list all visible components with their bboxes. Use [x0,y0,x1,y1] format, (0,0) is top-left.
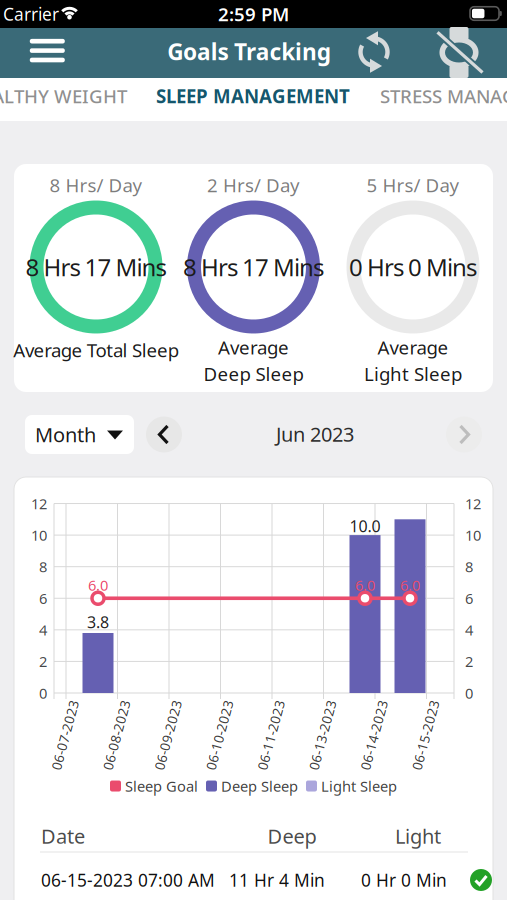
button[interactable]: Previous month [146,416,182,452]
staticText: 6.0 [400,575,420,595]
staticText: 2 [39,652,47,671]
staticText: 06-14-2023 [338,726,410,744]
staticText: Average [218,335,289,360]
staticText: 0 [465,683,473,703]
staticText: 11 Hr 4 Min [229,868,325,891]
staticText: 6.0 [88,575,108,595]
staticText: 12 [465,494,481,513]
staticText: 06-13-2023 [286,726,358,744]
staticText: Light Sleep [364,361,462,386]
staticText: 0 Hr 0 Min [361,868,447,891]
staticText: Average Total Sleep [13,338,179,362]
staticText: 10 [31,525,47,545]
staticText: 10 [465,525,481,545]
staticText: 10.0 [349,515,380,537]
staticText: 2 [465,652,473,671]
staticText: 2:59 PM [218,2,289,26]
staticText: 2 Hrs/ Day [207,173,300,197]
staticText: Light Sleep [321,776,397,796]
staticText: Deep [267,823,316,849]
staticText: 06-07-2023 [29,726,101,744]
staticText: 06-15-2023 [389,726,461,744]
staticText: 6 [39,588,47,608]
button[interactable]: Watch disconnected [435,26,483,78]
staticText: 8 Hrs 17 Mins [25,251,166,283]
staticText: 06-09-2023 [132,726,204,744]
staticText: 8 [39,557,47,576]
staticText: 06-11-2023 [235,726,307,744]
staticText: 8 Hrs/ Day [49,173,142,197]
staticText: Sleep Goal [125,776,198,796]
staticText: 5 Hrs/ Day [366,173,459,197]
staticText: 12 [31,494,47,513]
button[interactable]: Refresh [352,30,396,74]
staticText: 0 [39,683,47,703]
staticText: 06-15-2023 07:00 AM [41,868,215,891]
staticText: Date [41,823,85,849]
staticText: Deep Sleep [221,776,298,796]
staticText: 06-08-2023 [80,726,152,744]
staticText: SLEEP MANAGEMENT [156,84,350,108]
button[interactable]: Next month [446,416,482,452]
staticText: Goals Tracking [167,36,331,66]
button[interactable]: STRESS MANAGEMENT [380,84,507,108]
staticText: Carrier [3,2,59,25]
staticText: STRESS MANAGEMENT [380,84,507,108]
staticText: 6.0 [355,575,375,595]
staticText: HEALTHY WEIGHT [0,84,127,108]
button[interactable]: HEALTHY WEIGHT [0,84,127,108]
staticText: Deep Sleep [203,361,303,386]
staticText: Month [35,421,96,448]
staticText: 4 [39,620,47,640]
staticText: 6 [465,588,473,608]
button[interactable]: Month [25,415,134,454]
staticText: 4 [465,620,473,640]
button[interactable]: Menu [25,30,69,72]
staticText: 3.8 [87,611,109,633]
staticText: Light [395,823,441,849]
button[interactable]: SLEEP MANAGEMENT [156,84,350,108]
staticText: 8 Hrs 17 Mins [183,251,324,283]
staticText: 8 [465,557,473,576]
staticText: 0 Hrs 0 Mins [349,251,477,283]
staticText: Jun 2023 [276,421,354,447]
staticText: Average [377,335,448,360]
staticText: 06-10-2023 [183,726,255,744]
